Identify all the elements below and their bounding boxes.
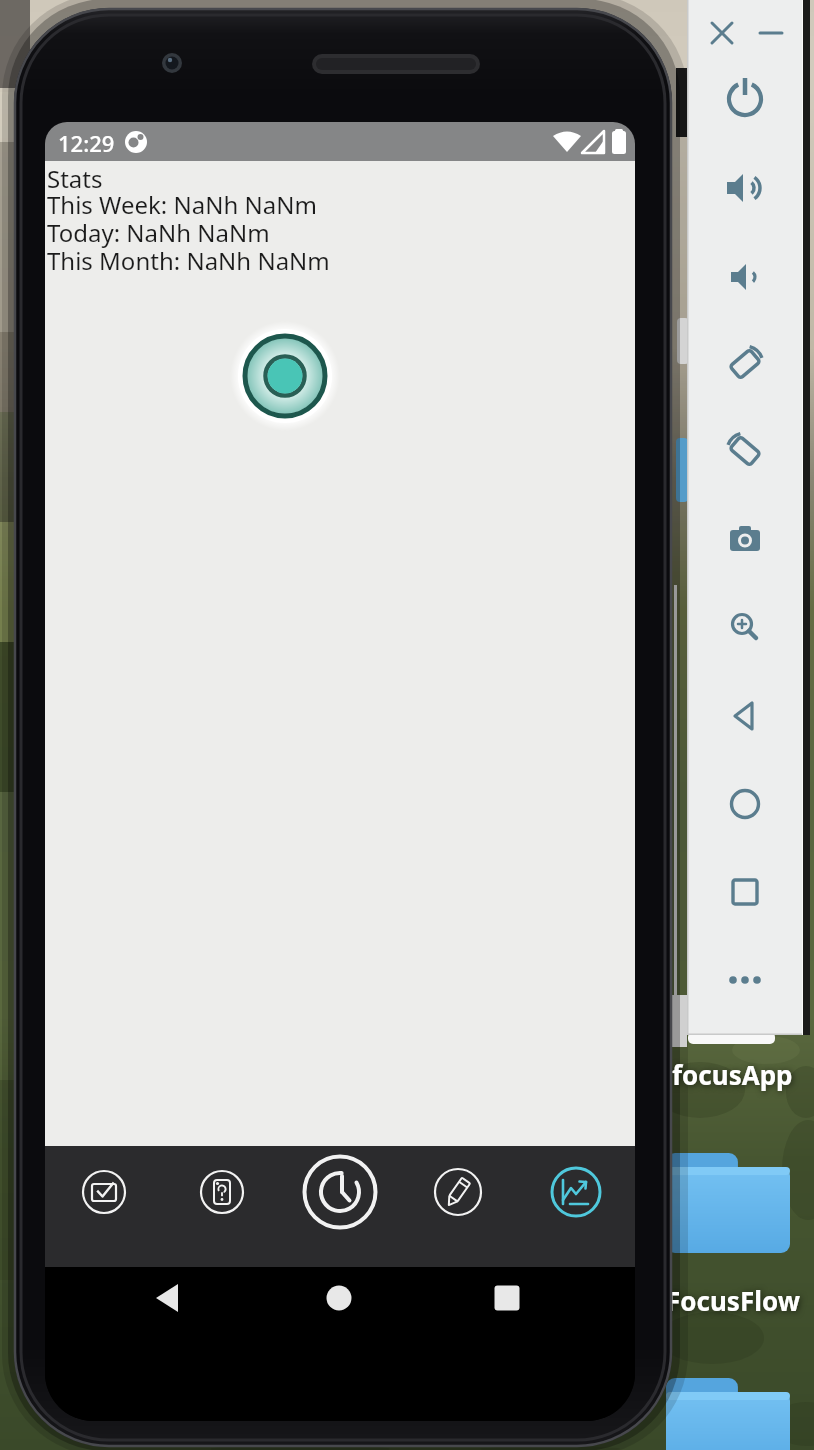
button[interactable] bbox=[751, 11, 791, 51]
staticText: Stats bbox=[47, 162, 103, 195]
button[interactable] bbox=[717, 71, 773, 127]
staticText: focusApp bbox=[672, 1057, 793, 1092]
staticText: FocusFlow bbox=[666, 1283, 800, 1318]
button[interactable] bbox=[431, 1165, 485, 1219]
button[interactable] bbox=[717, 864, 773, 920]
button[interactable] bbox=[78, 1166, 130, 1218]
button[interactable] bbox=[717, 336, 773, 392]
button[interactable] bbox=[717, 423, 773, 479]
button[interactable] bbox=[717, 688, 773, 744]
button[interactable] bbox=[717, 511, 773, 567]
button[interactable] bbox=[717, 160, 773, 216]
button[interactable] bbox=[702, 13, 742, 53]
button[interactable] bbox=[717, 249, 773, 305]
staticText: 12:29 bbox=[58, 128, 115, 158]
button[interactable] bbox=[548, 1164, 604, 1220]
button[interactable] bbox=[717, 599, 773, 655]
button[interactable] bbox=[666, 1378, 790, 1450]
button[interactable] bbox=[666, 1153, 790, 1255]
button[interactable] bbox=[315, 1274, 363, 1322]
button[interactable] bbox=[717, 776, 773, 832]
button[interactable] bbox=[230, 321, 340, 431]
button[interactable] bbox=[144, 1274, 192, 1322]
staticText: This Month: NaNh NaNm bbox=[47, 244, 330, 277]
button[interactable] bbox=[717, 952, 773, 1008]
staticText: This Week: NaNh NaNm bbox=[47, 188, 317, 221]
staticText: Today: NaNh NaNm bbox=[47, 216, 270, 249]
button[interactable] bbox=[196, 1166, 248, 1218]
button[interactable] bbox=[300, 1152, 380, 1232]
button[interactable] bbox=[483, 1274, 531, 1322]
